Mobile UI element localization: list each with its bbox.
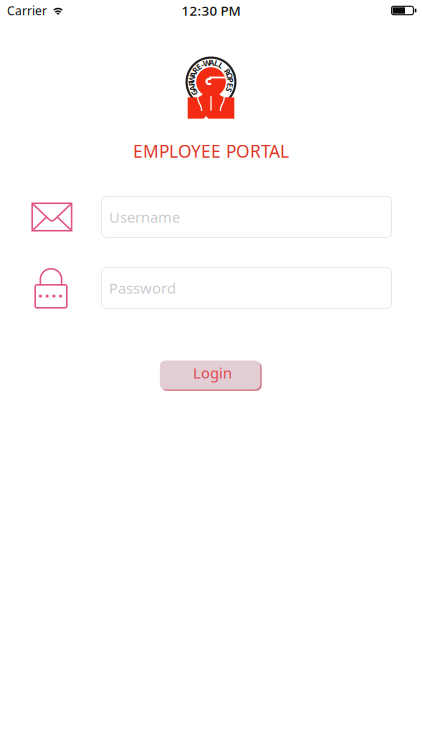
staticText: E [209,57,213,68]
staticText [210,57,212,68]
staticText: G [208,57,214,68]
staticText: O [208,57,214,68]
staticText: Login [193,363,232,383]
staticText: - [209,57,212,68]
staticText: EMPLOYEE PORTAL [133,139,289,162]
staticText: Carrier [7,2,47,18]
staticText: L [209,57,213,68]
staticText: A [208,57,214,68]
button[interactable]: Username [101,196,391,237]
staticText: W [207,57,215,68]
staticText: R [208,57,213,68]
staticText: S [209,57,213,68]
staticText: L [209,57,213,68]
staticText: 12:30 PM [181,2,240,19]
staticText: A [208,57,214,68]
staticText: R [208,57,213,68]
staticText: Username [109,207,180,227]
staticText: E [209,57,213,68]
staticText: P [208,57,213,68]
staticText: W [207,57,215,68]
staticText: Password [109,278,176,298]
button[interactable]: Password [101,267,391,308]
button[interactable]: Login [160,360,263,392]
staticText: R [208,57,213,68]
staticText: A [208,57,214,68]
